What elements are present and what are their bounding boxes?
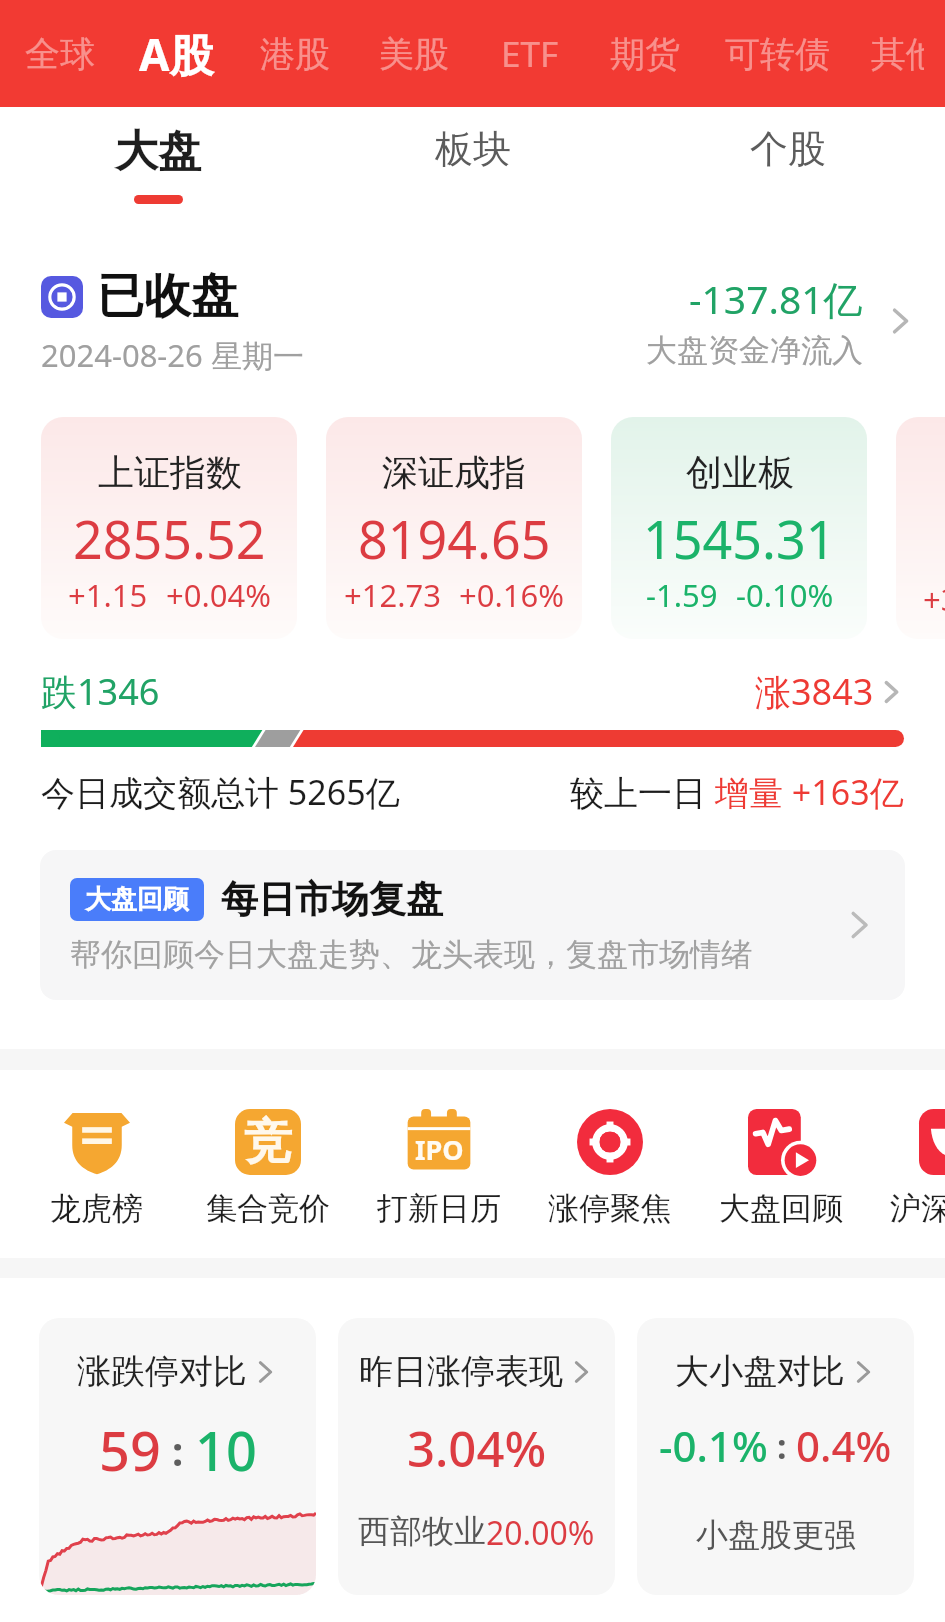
staticText: +0.16% bbox=[459, 574, 564, 616]
staticText: 深证成指 bbox=[382, 450, 526, 495]
staticText: 3.04% bbox=[407, 1415, 547, 1482]
staticText: : bbox=[777, 1423, 787, 1469]
staticText: 集合竞价 bbox=[206, 1189, 330, 1228]
button[interactable]: 大小盘对比 bbox=[637, 1318, 914, 1595]
button[interactable]: 龙虎榜 bbox=[11, 1109, 182, 1228]
staticText: 期货 bbox=[610, 32, 680, 76]
button[interactable]: 已收盘 bbox=[0, 235, 945, 417]
staticText: 10 bbox=[195, 1413, 257, 1487]
staticText: +1.15 bbox=[68, 574, 148, 616]
button[interactable]: A股 bbox=[116, 10, 237, 98]
staticText: 港股 bbox=[260, 32, 330, 76]
staticText: -1.59 bbox=[646, 574, 718, 616]
button[interactable]: 打新日历 bbox=[353, 1109, 524, 1228]
other: 沪深股通 bbox=[919, 1109, 945, 1175]
staticText: 较上一日 bbox=[570, 769, 715, 815]
other: 大盘回顾 bbox=[748, 1109, 814, 1175]
staticText: 涨跌停对比 bbox=[77, 1350, 247, 1393]
button[interactable]: 上证指数 bbox=[41, 417, 297, 639]
staticText: 小盘股更强 bbox=[696, 1515, 856, 1555]
staticText: 跌1346 bbox=[41, 667, 160, 716]
staticText: 大盘资金净流入 bbox=[646, 331, 863, 370]
staticText: 可转债 bbox=[725, 32, 830, 76]
button[interactable]: 港股 bbox=[237, 18, 353, 90]
staticText: 大盘 bbox=[115, 125, 201, 179]
button[interactable]: 全球 bbox=[4, 18, 116, 90]
staticText: 龙虎榜 bbox=[50, 1189, 143, 1228]
staticText: 打新日历 bbox=[377, 1189, 501, 1228]
staticText: 0.4% bbox=[796, 1417, 892, 1474]
staticText: 今日成交额总计 5265亿 bbox=[41, 769, 400, 815]
button[interactable]: ETF bbox=[475, 16, 585, 92]
staticText: 涨3843 bbox=[755, 667, 874, 716]
button[interactable]: 美股 bbox=[353, 18, 475, 90]
staticText: +3.20 bbox=[923, 578, 945, 620]
staticText: 20.00% bbox=[486, 1511, 595, 1555]
staticText: -0.1% bbox=[659, 1417, 768, 1474]
staticText: +0.04% bbox=[166, 574, 271, 616]
button[interactable]: 北证50 bbox=[896, 417, 945, 639]
staticText: 美股 bbox=[379, 32, 449, 76]
staticText: 沪深股通 bbox=[890, 1189, 945, 1228]
staticText: +12.73 bbox=[344, 574, 441, 616]
staticText: ETF bbox=[501, 30, 559, 78]
button[interactable]: 昨日涨停表现 bbox=[338, 1318, 615, 1595]
button[interactable]: 深证成指 bbox=[326, 417, 582, 639]
other: 涨停聚焦 bbox=[577, 1109, 643, 1175]
staticText: 2024-08-26 星期一 bbox=[41, 334, 304, 376]
staticText: 大盘回顾 bbox=[85, 883, 189, 916]
staticText: 创业板 bbox=[686, 450, 794, 495]
button[interactable]: 板块 bbox=[315, 107, 630, 235]
staticText: 1545.31 bbox=[643, 503, 836, 574]
staticText: 帮你回顾今日大盘走势、龙头表现，复盘市场情绪 bbox=[70, 935, 752, 974]
button[interactable]: 沪深股通 bbox=[866, 1109, 945, 1228]
button[interactable]: 大盘回顾 bbox=[40, 850, 905, 1000]
other: 打新日历 bbox=[406, 1109, 472, 1175]
button[interactable]: 涨停聚焦 bbox=[524, 1109, 695, 1228]
button[interactable]: 创业板 bbox=[611, 417, 867, 639]
button[interactable]: 跌1346 bbox=[41, 667, 904, 716]
staticText: 2855.52 bbox=[73, 503, 266, 574]
staticText: 大小盘对比 bbox=[675, 1350, 845, 1393]
staticText: 涨停聚焦 bbox=[548, 1189, 672, 1228]
button[interactable]: 个股 bbox=[630, 107, 945, 235]
other: 集合竞价 bbox=[235, 1109, 301, 1175]
button[interactable]: 大盘 bbox=[0, 107, 315, 235]
staticText: -0.10% bbox=[736, 574, 834, 616]
button[interactable]: 期货 bbox=[585, 18, 705, 90]
staticText: 8194.65 bbox=[358, 503, 551, 574]
staticText: : bbox=[172, 1423, 184, 1477]
staticText: 大盘回顾 bbox=[719, 1189, 843, 1228]
staticText: 竞 bbox=[244, 1112, 292, 1172]
button[interactable]: 可转债 bbox=[705, 18, 850, 90]
staticText: 全球 bbox=[25, 32, 95, 76]
staticText: 个股 bbox=[750, 125, 826, 173]
staticText: 其他 bbox=[871, 32, 924, 76]
other: 龙虎榜 bbox=[64, 1109, 130, 1175]
button[interactable]: 集合竞价 bbox=[182, 1109, 353, 1228]
button[interactable]: 其他 bbox=[850, 18, 945, 90]
staticText: 板块 bbox=[435, 125, 511, 173]
staticText: 西部牧业 bbox=[358, 1511, 486, 1551]
staticText: -137.81亿 bbox=[689, 272, 863, 325]
button[interactable]: 大盘回顾 bbox=[695, 1109, 866, 1228]
staticText: 上证指数 bbox=[98, 450, 242, 495]
staticText: IPO bbox=[415, 1131, 464, 1168]
staticText: 增量 +163亿 bbox=[715, 769, 904, 815]
staticText: 昨日涨停表现 bbox=[359, 1350, 563, 1393]
button[interactable]: 涨跌停对比 bbox=[39, 1318, 316, 1595]
staticText: 已收盘 bbox=[97, 267, 238, 326]
staticText: 59 bbox=[99, 1413, 161, 1487]
staticText: 每日市场复盘 bbox=[221, 876, 443, 923]
staticText: A股 bbox=[139, 24, 214, 84]
